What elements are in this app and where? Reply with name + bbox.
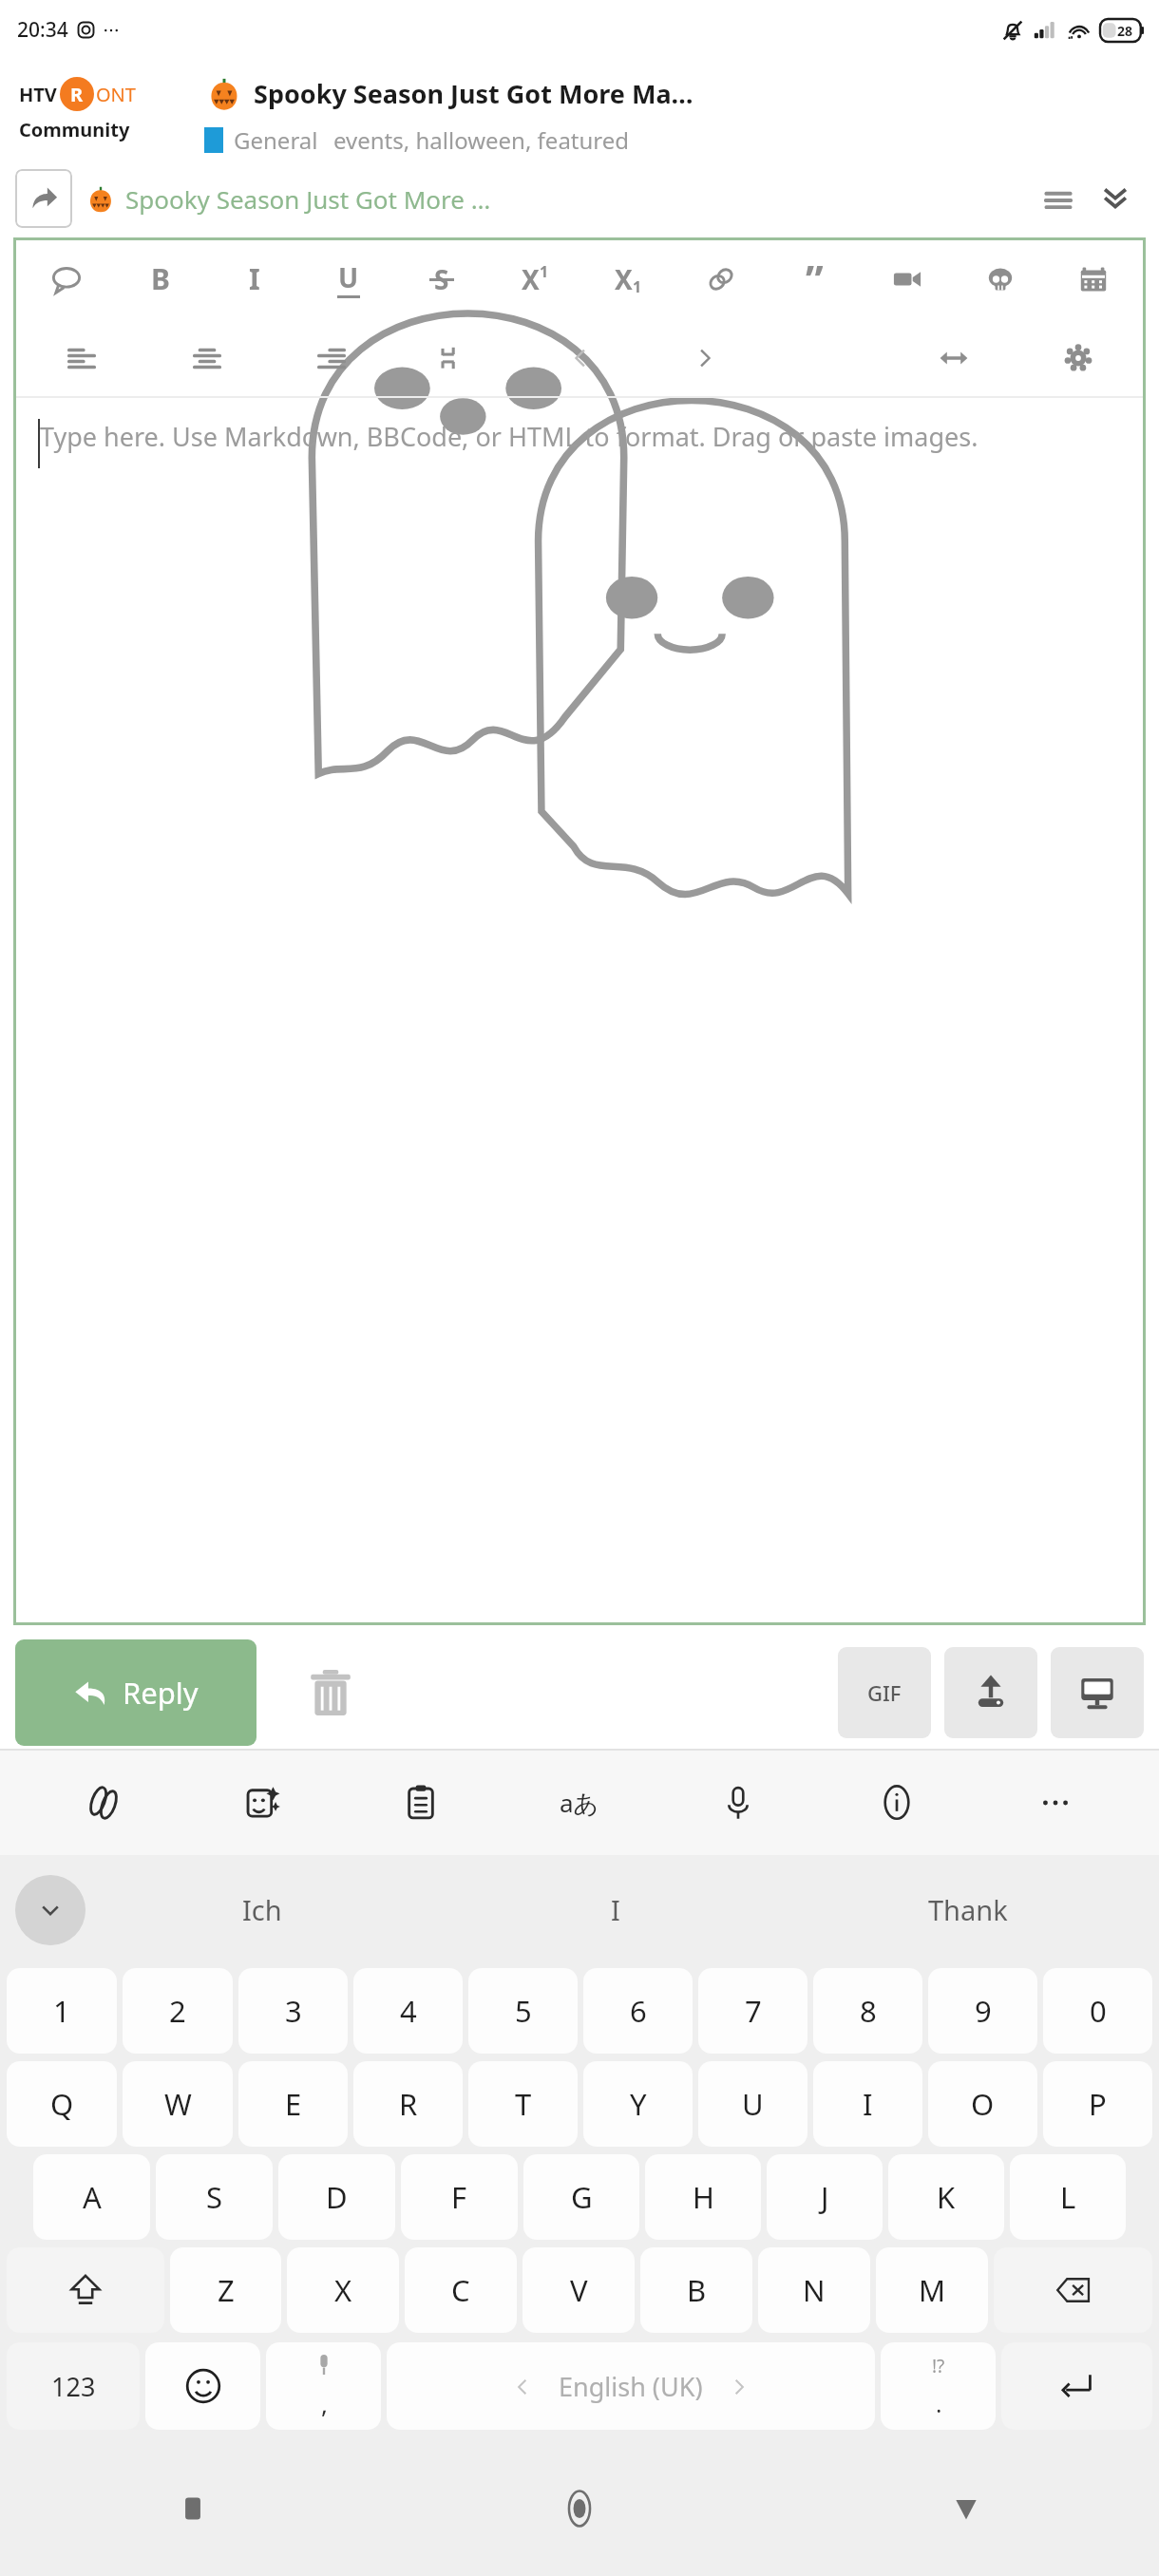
button[interactable]: B	[640, 2247, 752, 2333]
button[interactable]: Emoji	[145, 2342, 260, 2430]
button[interactable]: Backspace	[994, 2247, 1152, 2333]
staticText: GIF	[867, 1678, 902, 1707]
button[interactable]: C	[405, 2247, 517, 2333]
button[interactable]: Home	[386, 2441, 772, 2576]
staticText: X	[615, 261, 633, 297]
button[interactable]: Quote	[768, 237, 861, 320]
button[interactable]: Calendar	[1047, 237, 1140, 320]
button[interactable]: I	[439, 1855, 791, 1964]
button[interactable]: R	[353, 2061, 463, 2147]
button[interactable]: 8	[813, 1968, 922, 2054]
button[interactable]: Q	[7, 2061, 117, 2147]
button[interactable]: Comma	[266, 2342, 381, 2430]
button[interactable]: Thank	[791, 1855, 1144, 1964]
button[interactable]: Space	[387, 2342, 875, 2430]
staticText: .	[936, 2388, 942, 2419]
button[interactable]: Delete	[285, 1647, 376, 1738]
button[interactable]: Strikethrough	[395, 237, 488, 320]
staticText: Thank	[928, 1891, 1008, 1928]
button[interactable]: K	[888, 2154, 1004, 2240]
staticText: 1	[633, 276, 642, 297]
button[interactable]: Superscript	[488, 237, 581, 320]
button[interactable]: D	[278, 2154, 395, 2240]
button[interactable]: Numbers	[7, 2342, 140, 2430]
button[interactable]: Previous	[518, 320, 642, 396]
button[interactable]: P	[1043, 2061, 1152, 2147]
button[interactable]: 2	[123, 1968, 233, 2054]
button[interactable]: 5	[468, 1968, 578, 2054]
button[interactable]: Spoiler	[954, 237, 1047, 320]
staticText: 7	[745, 1991, 762, 2031]
button[interactable]: 3	[238, 1968, 348, 2054]
button[interactable]: F	[401, 2154, 518, 2240]
button[interactable]: Underline	[301, 237, 395, 320]
button[interactable]: Stickers	[182, 1751, 341, 1855]
button[interactable]: Recents	[0, 2441, 386, 2576]
button[interactable]: Back	[772, 2441, 1159, 2576]
staticText: Spooky Season Just Got More Ma…	[254, 76, 693, 111]
button[interactable]: Italic	[207, 237, 301, 320]
button[interactable]: Next	[642, 320, 767, 396]
button[interactable]: Language	[500, 1751, 658, 1855]
staticText: I	[863, 2084, 873, 2124]
button[interactable]: Keyboard themes	[25, 1751, 182, 1855]
button[interactable]: Info	[817, 1751, 976, 1855]
button[interactable]: 9	[928, 1968, 1037, 2054]
button[interactable]: Menu	[1030, 170, 1087, 227]
button[interactable]: Ich	[85, 1855, 439, 1964]
button[interactable]: Voice input	[658, 1751, 817, 1855]
button[interactable]: Share	[15, 169, 72, 228]
button[interactable]: Bold	[113, 237, 207, 320]
staticText: P	[1089, 2084, 1107, 2124]
button[interactable]: J	[767, 2154, 883, 2240]
button[interactable]: G	[523, 2154, 639, 2240]
button[interactable]: X	[287, 2247, 399, 2333]
button[interactable]: Link	[674, 237, 768, 320]
button[interactable]: N	[758, 2247, 870, 2333]
button[interactable]: 1	[7, 1968, 117, 2054]
button[interactable]: Video	[861, 237, 954, 320]
button[interactable]: Reply	[15, 1639, 256, 1746]
button[interactable]: More	[976, 1751, 1134, 1855]
button[interactable]: GIF	[838, 1647, 931, 1738]
button[interactable]: 6	[583, 1968, 693, 2054]
button[interactable]: Subscript	[581, 237, 674, 320]
button[interactable]: V	[522, 2247, 635, 2333]
button[interactable]: 4	[353, 1968, 463, 2054]
staticText: U	[338, 259, 359, 295]
button[interactable]: Hide suggestions	[15, 1875, 85, 1945]
button[interactable]: 7	[698, 1968, 807, 2054]
button[interactable]: S	[156, 2154, 273, 2240]
button[interactable]: Settings	[1016, 320, 1140, 396]
button[interactable]: L	[1010, 2154, 1126, 2240]
button[interactable]: U	[698, 2061, 807, 2147]
button[interactable]: 0	[1043, 1968, 1152, 2054]
staticText: 2	[169, 1991, 186, 2031]
button[interactable]: Z	[170, 2247, 281, 2333]
button[interactable]: Preview	[1051, 1647, 1144, 1738]
button[interactable]: O	[928, 2061, 1037, 2147]
button[interactable]: Align left	[19, 320, 144, 396]
button[interactable]: Comment	[19, 237, 113, 320]
button[interactable]: Resize	[891, 320, 1016, 396]
button[interactable]: Align center	[144, 320, 269, 396]
staticText: Reply	[123, 1673, 199, 1713]
staticText: B	[151, 259, 170, 298]
button[interactable]: Clipboard	[341, 1751, 500, 1855]
button[interactable]: A	[33, 2154, 150, 2240]
button[interactable]: Enter	[1001, 2342, 1152, 2430]
staticText: U	[742, 2084, 764, 2124]
button[interactable]: Collapse	[393, 320, 518, 396]
button[interactable]: Expand	[1087, 170, 1144, 227]
button[interactable]: T	[468, 2061, 578, 2147]
button[interactable]: Shift	[7, 2247, 164, 2333]
button[interactable]: E	[238, 2061, 348, 2147]
button[interactable]: I	[813, 2061, 922, 2147]
button[interactable]: H	[645, 2154, 761, 2240]
button[interactable]: Align right	[269, 320, 393, 396]
button[interactable]: Punctuation	[881, 2342, 996, 2430]
button[interactable]: Upload	[944, 1647, 1037, 1738]
button[interactable]: M	[876, 2247, 988, 2333]
button[interactable]: W	[123, 2061, 233, 2147]
button[interactable]: Y	[583, 2061, 693, 2147]
